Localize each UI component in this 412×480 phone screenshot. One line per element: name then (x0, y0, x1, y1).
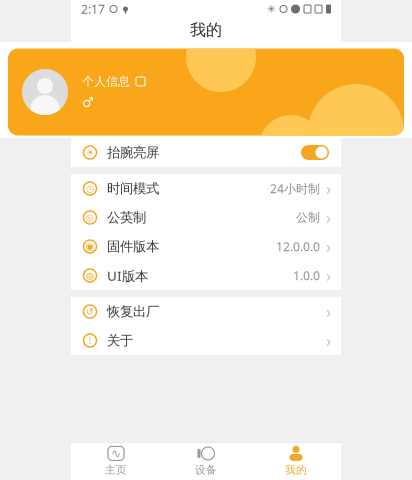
staticText: 主页 (105, 463, 127, 476)
button[interactable]: ∿ (71, 442, 161, 480)
staticText: UI版本 (107, 267, 148, 284)
button[interactable]: ◷ (71, 174, 341, 203)
button[interactable]: 设备 (161, 442, 251, 480)
staticText: ! (88, 334, 91, 347)
button[interactable]: ☀ (71, 138, 341, 167)
staticText: 时间模式 (107, 180, 159, 197)
staticText: ◎ (86, 212, 94, 223)
staticText: ♂ (82, 95, 94, 110)
staticText: 公英制 (107, 209, 146, 226)
button[interactable]: ▣ (71, 232, 341, 261)
staticText: ◷ (86, 183, 94, 194)
staticText: 设备 (195, 463, 217, 476)
staticText: 关于 (107, 332, 133, 349)
staticText: 1.0.0 (293, 267, 320, 283)
staticText: 个人信息 (82, 74, 130, 89)
staticText: › (326, 330, 331, 351)
staticText: 我的 (190, 20, 222, 40)
staticText: ☀ (86, 147, 94, 158)
staticText: ▣ (85, 241, 94, 252)
staticText: 12.0.0.0 (276, 238, 320, 254)
staticText: › (326, 301, 331, 322)
button[interactable]: ! (71, 326, 341, 355)
button[interactable]: ◎ (71, 203, 341, 232)
staticText: ✳ (267, 3, 276, 15)
staticText: › (326, 236, 331, 257)
staticText: 2:17 (81, 1, 105, 17)
button[interactable]: 我的 (251, 442, 341, 480)
staticText: 公制 (296, 210, 320, 225)
staticText: › (326, 265, 331, 286)
staticText: 固件版本 (107, 238, 159, 255)
staticText: ↺ (86, 306, 94, 317)
staticText: ◍ (86, 270, 94, 281)
button[interactable]: ↺ (71, 297, 341, 326)
staticText: 24小时制 (270, 180, 320, 196)
staticText: ∿ (111, 447, 121, 460)
staticText: 抬腕亮屏 (107, 144, 159, 161)
staticText: › (326, 178, 331, 199)
staticText: 我的 (285, 463, 307, 476)
staticText: 恢复出厂 (107, 303, 159, 320)
staticText: › (326, 207, 331, 228)
button[interactable]: ◍ (71, 261, 341, 290)
